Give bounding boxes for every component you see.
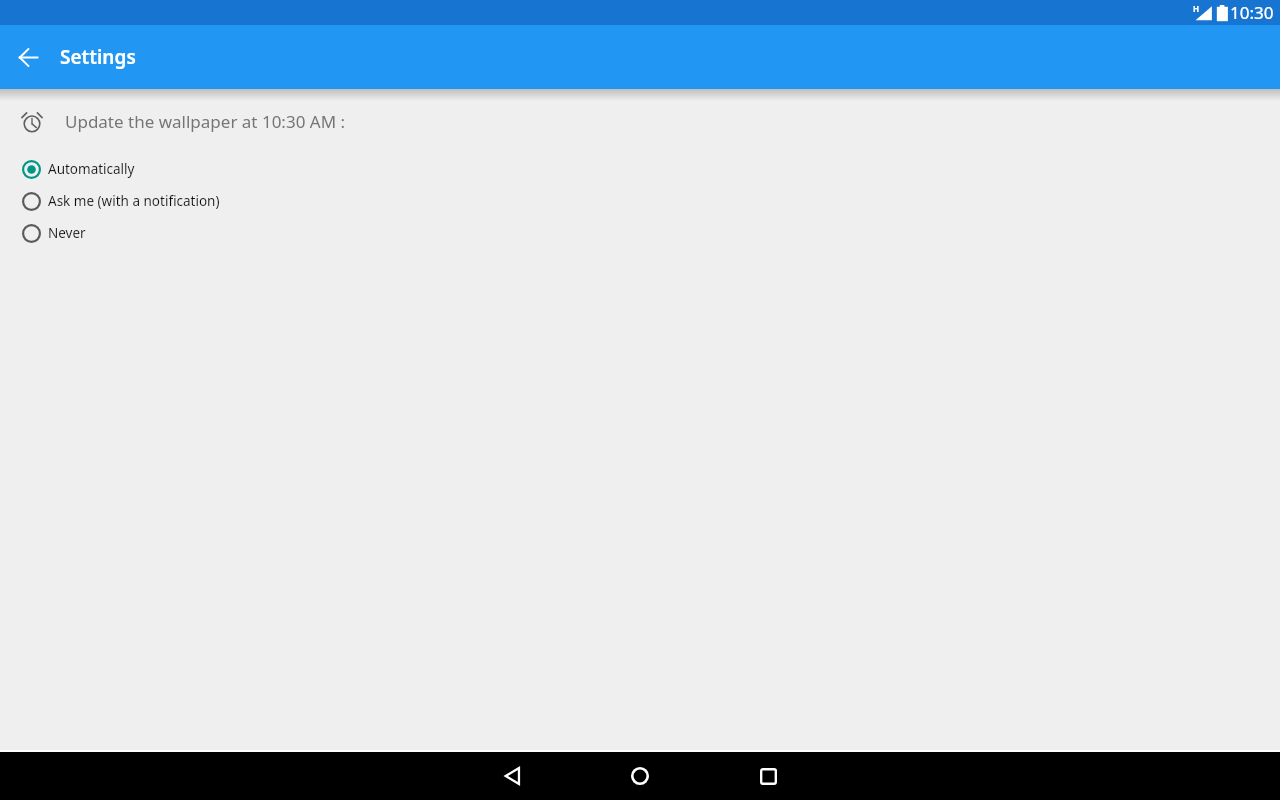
button[interactable]: Ask me (with a notification) xyxy=(0,185,1280,217)
staticText: 10:30 xyxy=(1230,1,1274,24)
staticText: Settings xyxy=(60,44,136,70)
staticText: Automatically xyxy=(48,160,135,178)
button[interactable]: Never xyxy=(0,217,1280,249)
button[interactable]: Navigate up xyxy=(0,29,56,85)
button[interactable]: Recent apps xyxy=(736,752,800,800)
button[interactable]: Back xyxy=(480,752,544,800)
staticText: H xyxy=(1193,3,1200,14)
button[interactable]: Automatically xyxy=(0,153,1280,185)
staticText: Update the wallpaper at 10:30 AM : xyxy=(65,110,346,133)
staticText: Ask me (with a notification) xyxy=(48,192,220,210)
button[interactable]: Home xyxy=(608,752,672,800)
staticText: Never xyxy=(48,224,86,242)
